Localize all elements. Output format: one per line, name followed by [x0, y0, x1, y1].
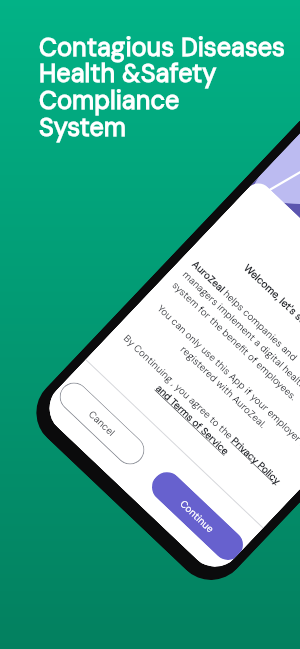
- staticText: By Continuing , you agree to the Privacy…: [110, 330, 285, 499]
- staticText: You can only use this App if your employ…: [141, 298, 300, 466]
- staticText: Cancel: [86, 408, 118, 439]
- staticText: Continue: [177, 497, 217, 535]
- staticText: AuroZeal helps companies and managers im…: [170, 258, 300, 403]
- staticText: Welcome, let's start: [241, 261, 300, 335]
- button[interactable]: Cancel: [54, 376, 150, 470]
- button[interactable]: Continue: [146, 466, 248, 565]
- staticText: Contagious Diseases Health &Safety Compl…: [39, 31, 285, 144]
